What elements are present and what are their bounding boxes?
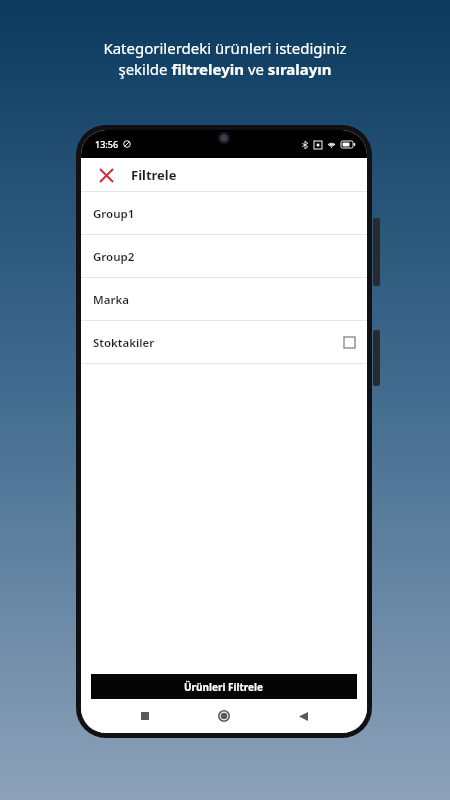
staticText: Marka	[93, 292, 129, 308]
button[interactable]: Back	[288, 701, 318, 731]
staticText: Filtrele	[131, 166, 177, 184]
staticText: Group2	[93, 249, 135, 265]
button[interactable]: Kapat	[93, 162, 119, 188]
staticText: Stoktakiler	[93, 335, 155, 351]
button[interactable]: Group2	[81, 235, 367, 278]
staticText: Kategorilerdeki ürünleri istediginiz şek…	[103, 38, 347, 80]
staticText: 13:56	[95, 138, 119, 150]
staticText: Ürünleri Filtrele	[184, 680, 264, 694]
button[interactable]: Stoktakiler	[81, 321, 367, 364]
button[interactable]: Ürünleri Filtrele	[91, 674, 357, 699]
staticText: Group1	[93, 206, 135, 222]
button[interactable]: Recents	[130, 701, 160, 731]
button[interactable]: Group1	[81, 192, 367, 235]
button[interactable]: Marka	[81, 278, 367, 321]
button[interactable]: Home	[209, 701, 239, 731]
